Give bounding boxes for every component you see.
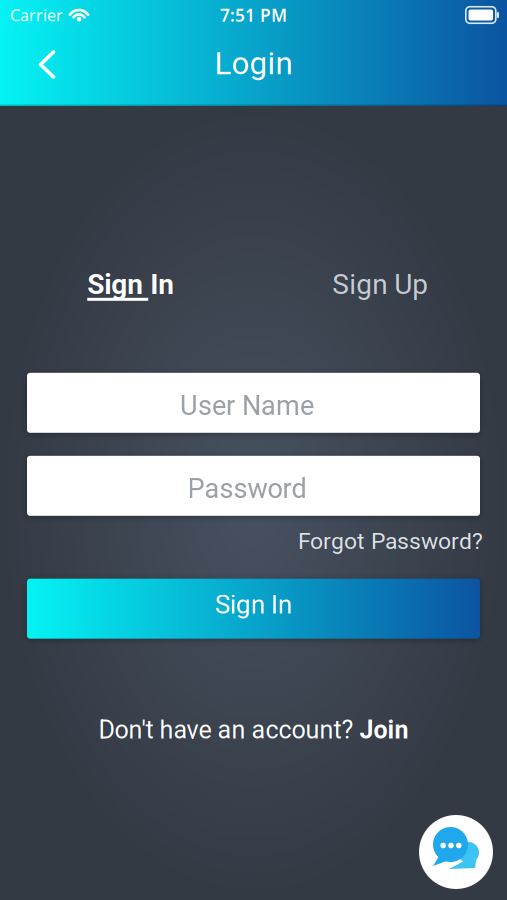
staticText: Sign In — [87, 268, 174, 301]
button[interactable]: Sign Up — [332, 268, 428, 306]
staticText: 7:51 PM — [220, 3, 287, 26]
button[interactable]: Forgot Password? — [298, 528, 483, 555]
button[interactable]: Don't have an account? Join — [98, 716, 408, 744]
staticText: Sign In — [215, 589, 292, 620]
staticText: Don't have an account? Join — [98, 716, 408, 744]
staticText: User Name — [180, 390, 314, 422]
button[interactable]: Sign In — [83, 268, 170, 306]
button[interactable]: Back — [38, 55, 55, 84]
button[interactable]: Chat — [419, 815, 493, 889]
staticText: Password — [187, 473, 306, 505]
staticText: Forgot Password? — [298, 528, 483, 555]
staticText: Login — [214, 45, 292, 82]
staticText: Sign Up — [332, 268, 428, 301]
button[interactable]: Sign In — [27, 579, 480, 639]
staticText: Carrier — [10, 4, 63, 26]
